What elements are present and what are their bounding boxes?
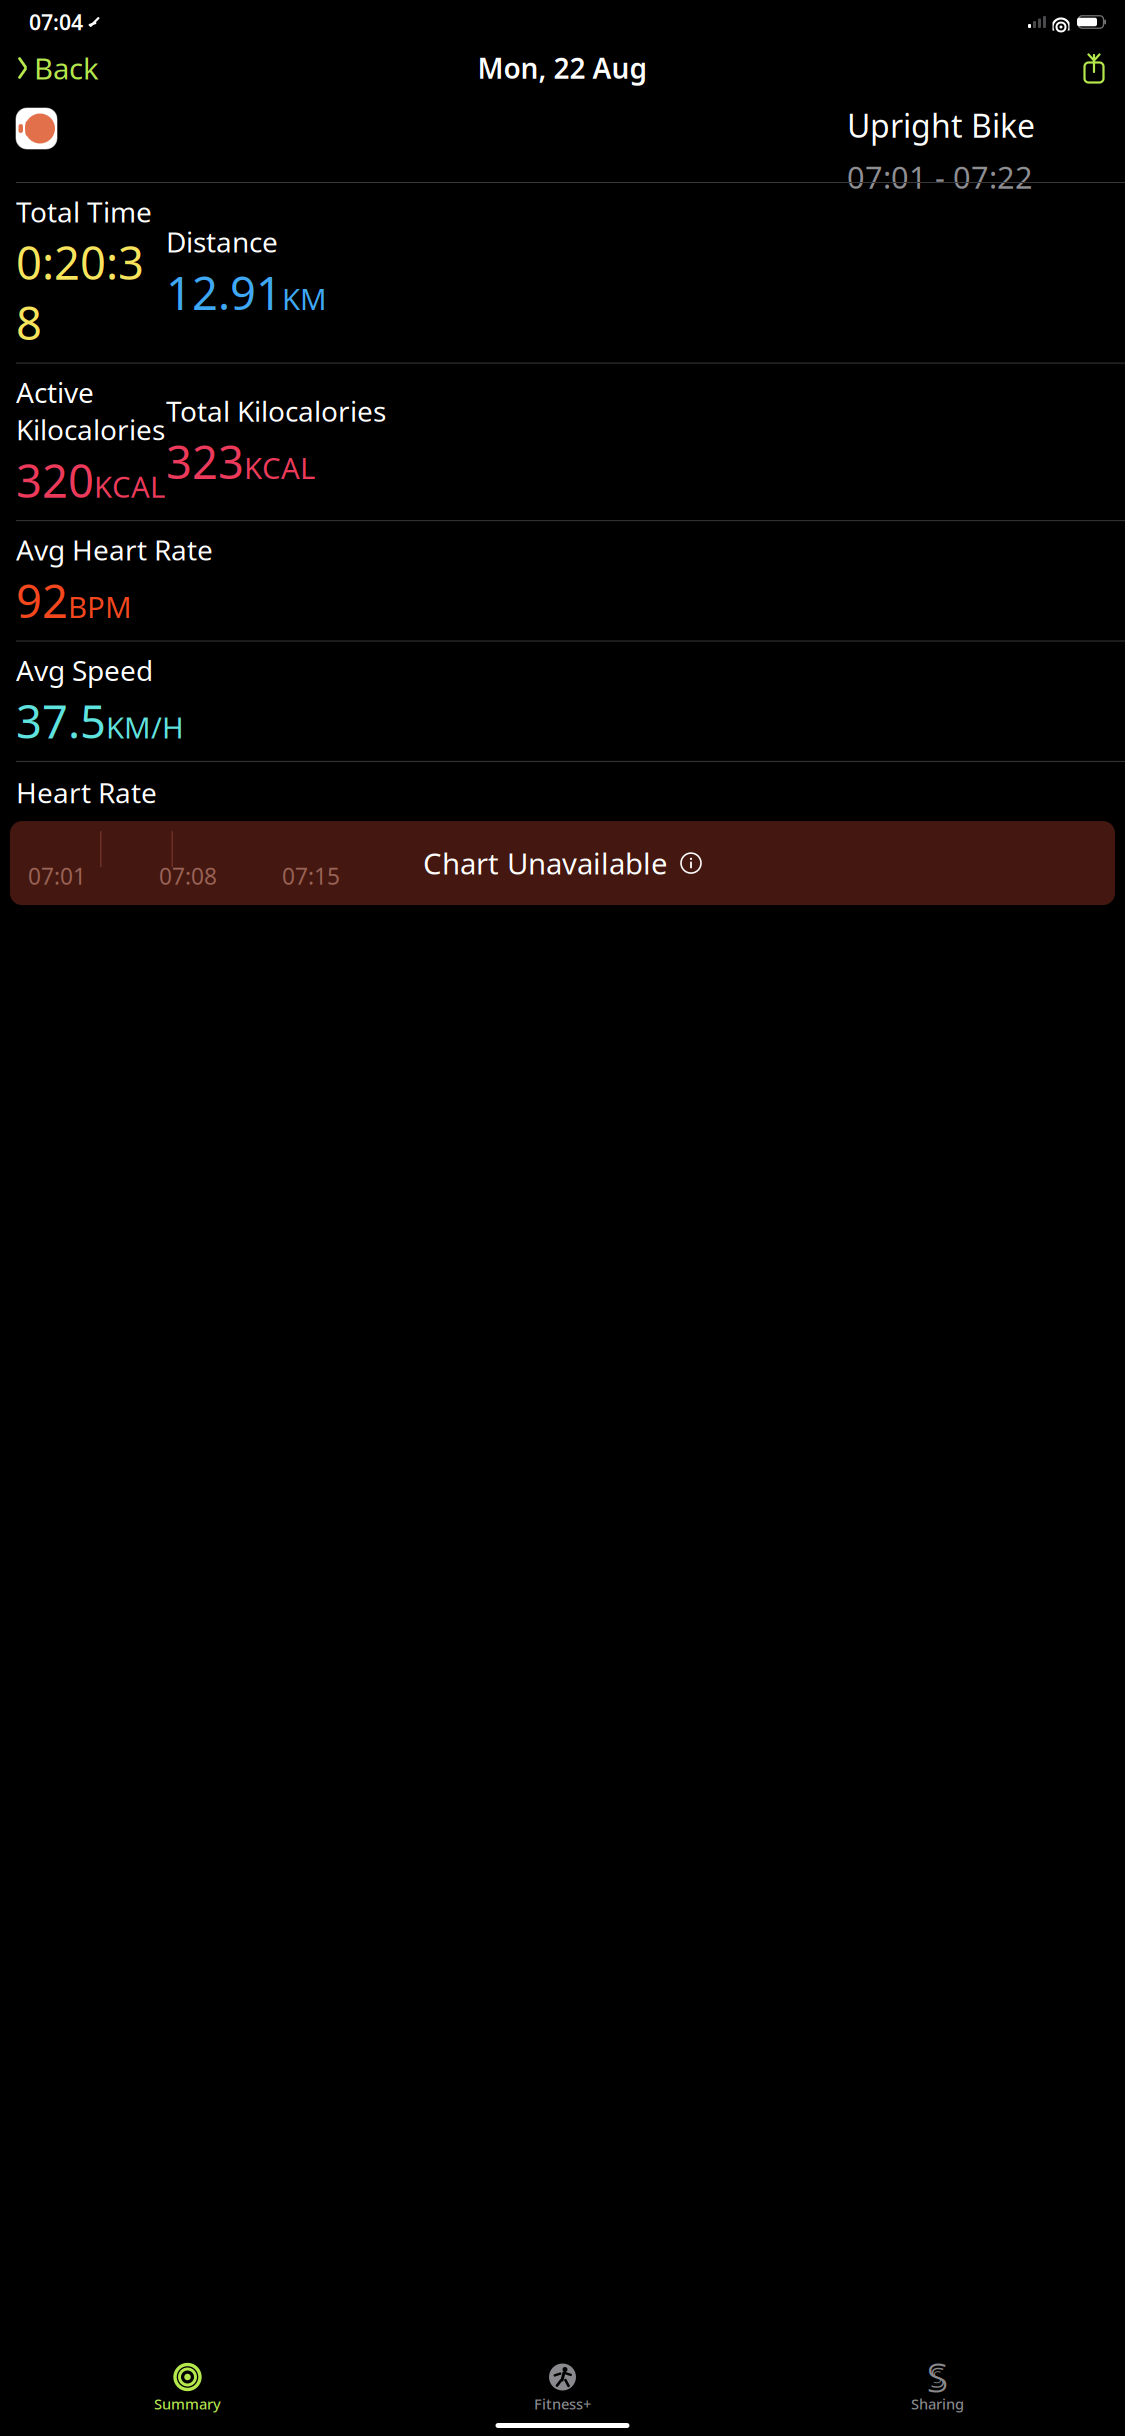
staticText: 07:01 - 07:22: [847, 156, 1033, 197]
staticText: 12.91: [166, 262, 282, 322]
staticText: Heart Rate: [16, 774, 157, 811]
staticText: KM/H: [106, 707, 184, 746]
staticText: Sharing: [911, 2394, 964, 2413]
staticText: Distance: [166, 223, 278, 260]
staticText: 07:15: [282, 861, 340, 891]
staticText: S: [926, 2350, 948, 2403]
staticText: 92: [16, 570, 68, 630]
button[interactable]: Share: [1071, 49, 1117, 87]
staticText: Chart Unavailable: [423, 844, 668, 883]
staticText: Summary: [154, 2394, 221, 2413]
staticText: 07:04: [29, 8, 83, 36]
staticText: BPM: [68, 587, 132, 626]
staticText: 0:20:38: [16, 232, 144, 353]
staticText: Fitness+: [534, 2394, 591, 2413]
staticText: Total Kilocalories: [166, 392, 386, 429]
staticText: Avg Heart Rate: [16, 531, 213, 568]
button[interactable]: Summary: [0, 2359, 375, 2417]
staticText: S: [933, 2366, 942, 2388]
staticText: Total Time: [16, 193, 152, 230]
button[interactable]: S: [750, 2359, 1125, 2417]
staticText: Mon, 22 Aug: [477, 49, 647, 87]
staticText: Avg Speed: [16, 651, 153, 689]
staticText: 37.5: [16, 691, 106, 751]
staticText: Upright Bike: [847, 104, 1035, 146]
staticText: S: [930, 2358, 945, 2396]
staticText: Active Kilocalories: [16, 374, 165, 448]
button[interactable]: Back: [8, 42, 99, 93]
staticText: 07:01: [28, 861, 86, 891]
staticText: 07:08: [159, 861, 217, 891]
staticText: 323: [166, 431, 244, 492]
staticText: KM: [282, 279, 327, 318]
staticText: KCAL: [94, 467, 165, 506]
button[interactable]: Fitness+: [375, 2359, 750, 2417]
staticText: KCAL: [244, 448, 315, 487]
staticText: Back: [34, 48, 99, 87]
staticText: 320: [16, 450, 94, 510]
